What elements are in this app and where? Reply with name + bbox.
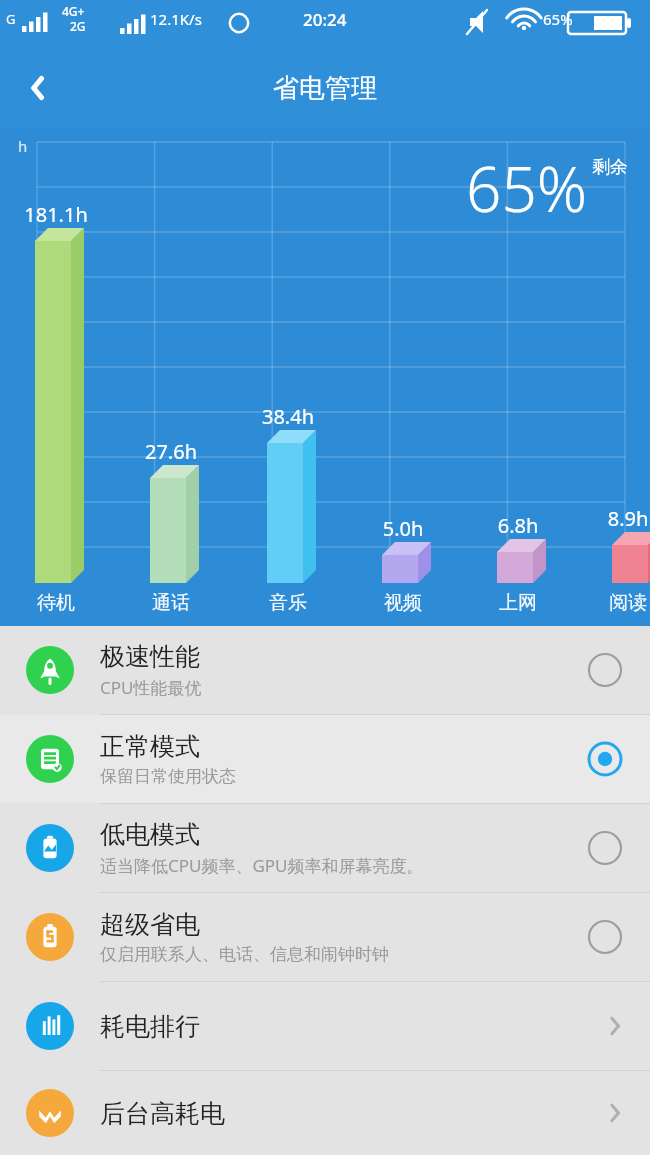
button[interactable]: 低电模式 <box>0 804 650 892</box>
staticText: G <box>6 10 16 28</box>
staticText: 6.8h <box>479 512 557 539</box>
staticText: 视频 <box>364 591 442 615</box>
staticText: 仅启用联系人、电话、信息和闹钟时钟 <box>100 944 389 965</box>
staticText: 20:24 <box>303 8 347 31</box>
staticText: 低电模式 <box>100 819 200 850</box>
other: Selected <box>560 715 650 803</box>
other: Select <box>560 893 650 981</box>
staticText: 音乐 <box>249 591 327 615</box>
staticText: 剩余 <box>592 156 628 179</box>
staticText: 2G <box>70 18 86 34</box>
staticText: 38.4h <box>249 403 327 430</box>
button[interactable]: 后台高耗电 <box>0 1071 650 1155</box>
staticText: 27.6h <box>132 438 210 465</box>
staticText: 上网 <box>479 591 557 615</box>
staticText: CPU性能最优 <box>100 676 202 699</box>
button[interactable]: 超级省电 <box>0 893 650 981</box>
staticText: 8.9h <box>589 505 650 532</box>
staticText: 181.1h <box>17 201 95 228</box>
staticText: 65% <box>543 9 573 29</box>
staticText: 后台高耗电 <box>100 1098 580 1129</box>
other: Select <box>560 804 650 892</box>
staticText: 耗电排行 <box>100 1011 580 1042</box>
staticText: 极速性能 <box>100 641 200 672</box>
staticText: 省电管理 <box>273 72 377 105</box>
button[interactable]: 正常模式 <box>0 715 650 803</box>
staticText: 12.1K/s <box>150 9 202 29</box>
staticText: 通话 <box>132 591 210 615</box>
staticText: 65% <box>466 146 588 230</box>
staticText: 5.0h <box>364 515 442 542</box>
staticText: h <box>18 136 28 156</box>
staticText: 待机 <box>17 591 95 615</box>
staticText: 适当降低CPU频率、GPU频率和屏幕亮度。 <box>100 854 424 877</box>
other: Select <box>560 626 650 714</box>
staticText: 4G+ <box>62 3 85 19</box>
staticText: 阅读 <box>589 591 650 615</box>
button[interactable]: Back <box>0 50 76 126</box>
staticText: 保留日常使用状态 <box>100 766 236 787</box>
button[interactable]: 极速性能 <box>0 626 650 714</box>
staticText: 超级省电 <box>100 909 200 940</box>
staticText: 正常模式 <box>100 731 200 762</box>
button[interactable]: 耗电排行 <box>0 982 650 1070</box>
